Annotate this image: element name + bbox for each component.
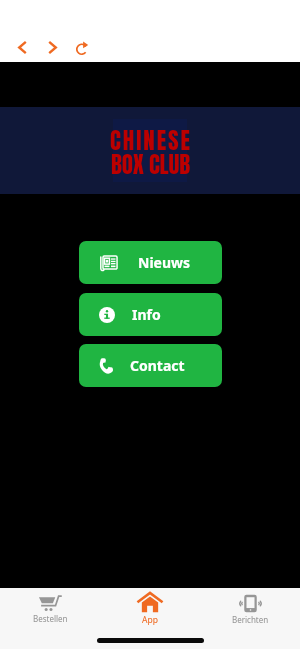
staticText: App <box>142 614 158 626</box>
staticText: Nieuws <box>138 253 191 272</box>
staticText: Info <box>132 305 161 324</box>
button[interactable]: Reload <box>67 31 97 63</box>
button[interactable]: Info <box>79 293 222 336</box>
button[interactable]: Berichten <box>200 589 300 629</box>
button[interactable]: Contact <box>79 344 222 387</box>
staticText: CHINESE <box>110 123 192 158</box>
staticText: Contact <box>130 356 185 375</box>
staticText: Bestellen <box>33 613 68 624</box>
button[interactable]: Nieuws <box>79 241 222 284</box>
button[interactable]: Back <box>7 31 37 63</box>
staticText: BOX CLUB <box>111 147 191 182</box>
button[interactable]: Forward <box>37 31 67 63</box>
button[interactable]: App <box>100 589 200 629</box>
button[interactable]: Bestellen <box>0 589 100 629</box>
staticText: Berichten <box>232 614 269 625</box>
